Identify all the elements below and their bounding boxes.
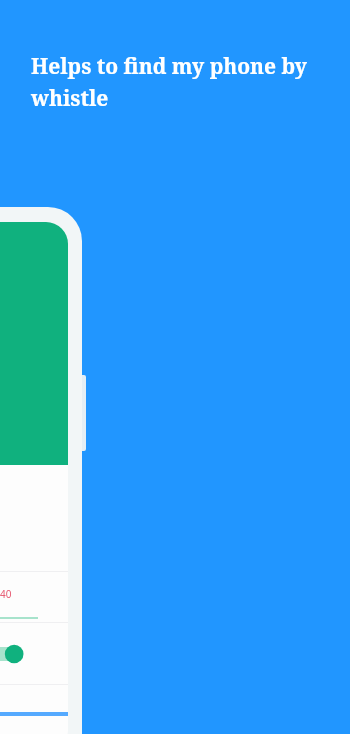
button[interactable]: Toggle whistle detection xyxy=(0,645,26,663)
staticText: Helps to find my phone by whistle xyxy=(31,52,322,112)
button[interactable]: 40 xyxy=(0,572,68,622)
staticText: 40 xyxy=(0,587,12,601)
button[interactable]: Toggle whistle detection xyxy=(0,623,68,684)
button[interactable]: Power button xyxy=(82,375,86,451)
button[interactable]: Helps to find my phone by whistle xyxy=(31,52,322,112)
